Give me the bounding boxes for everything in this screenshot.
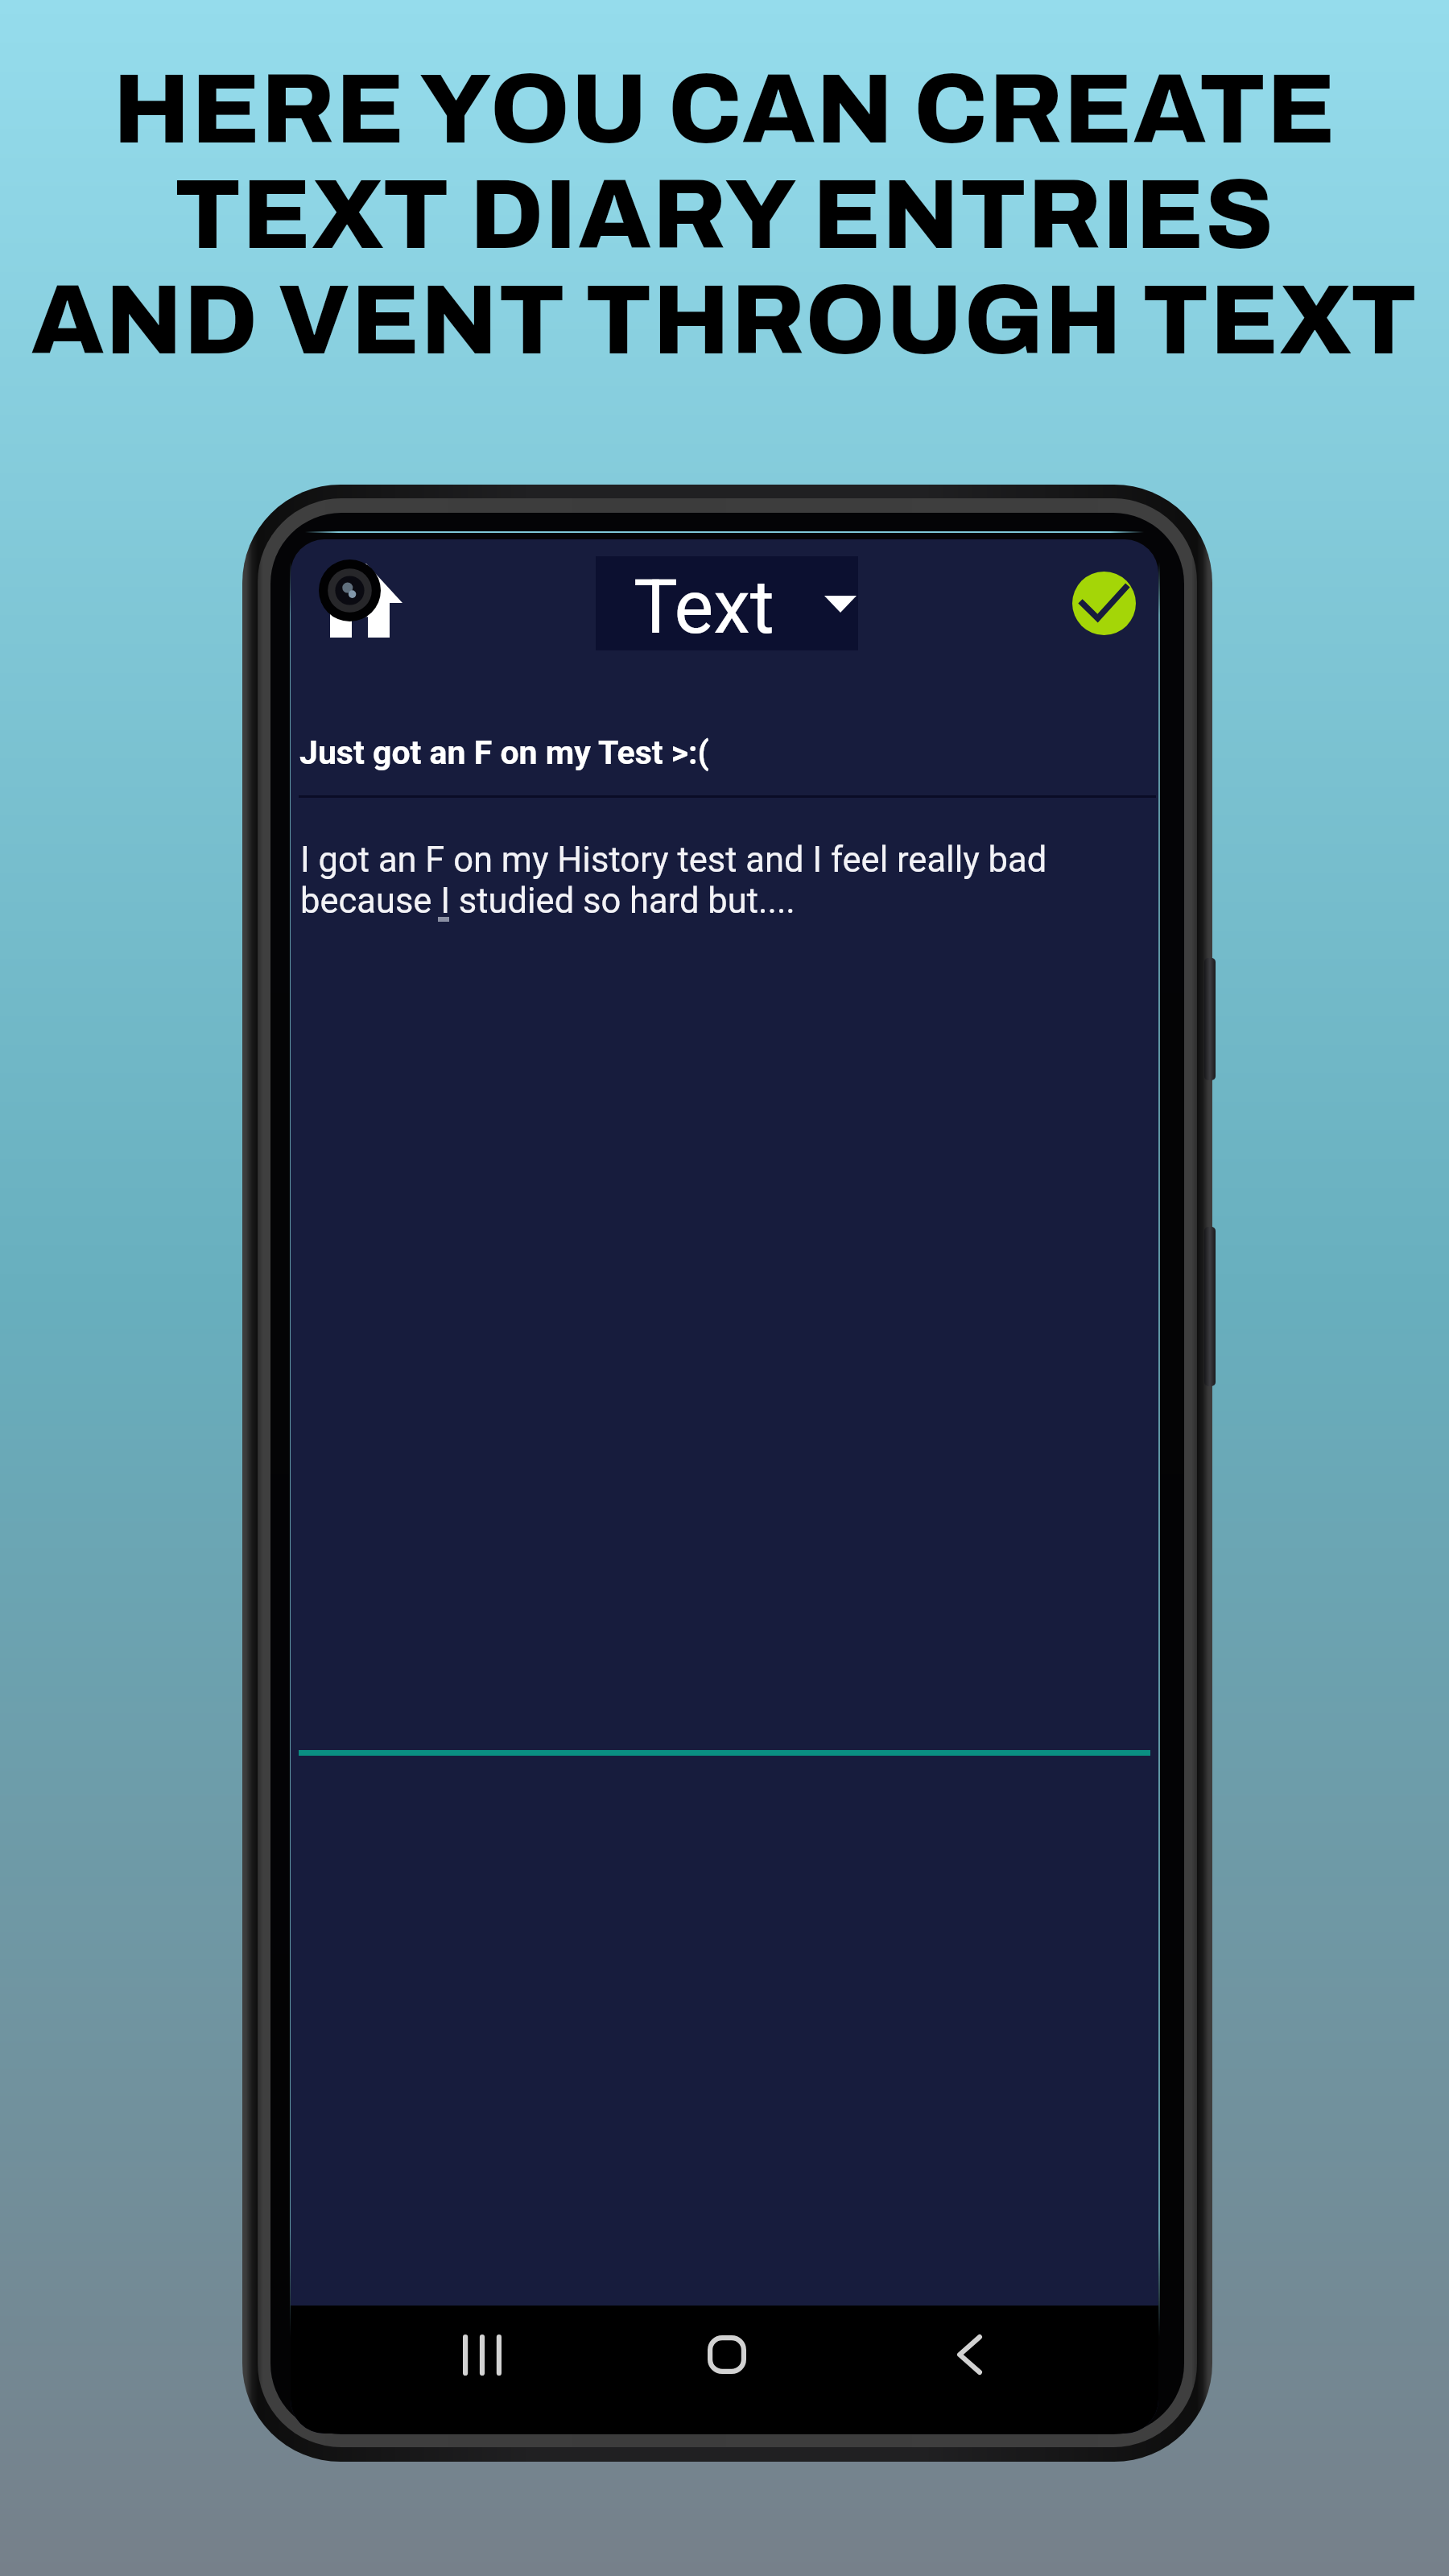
- staticText: Text: [634, 564, 774, 651]
- button[interactable]: Save entry: [1072, 572, 1136, 635]
- staticText: Just got an F on my Test >:(: [299, 733, 709, 772]
- button[interactable]: Back: [921, 2306, 1018, 2403]
- staticText: I got an F on my History test and I feel…: [300, 840, 1073, 921]
- button[interactable]: Text: [596, 556, 858, 650]
- button[interactable]: Home: [328, 563, 402, 638]
- button[interactable]: Home: [679, 2306, 775, 2403]
- button[interactable]: Recent apps: [434, 2306, 530, 2403]
- staticText: HERE YOU CAN CREATE TEXT DIARY ENTRIES A…: [0, 56, 1449, 374]
